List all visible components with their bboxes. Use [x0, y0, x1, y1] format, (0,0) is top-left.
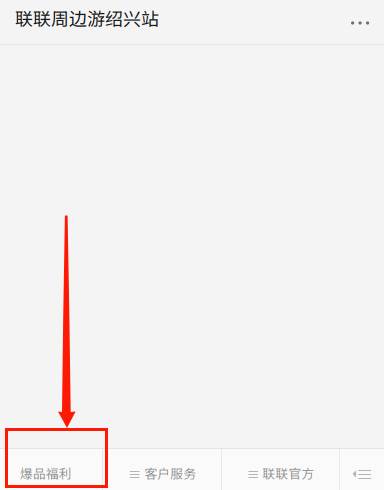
button[interactable]: Hide panel [339, 449, 384, 490]
staticText: 联联官方 [262, 464, 314, 482]
staticText: 联联周边游绍兴站 [15, 5, 159, 31]
button[interactable]: 爆品福利 [0, 449, 102, 490]
staticText: 爆品福利 [20, 464, 72, 482]
button[interactable]: More options [335, 0, 379, 44]
button[interactable]: 客户服务 [102, 449, 221, 490]
button[interactable]: 联联官方 [221, 449, 339, 490]
staticText: 客户服务 [144, 464, 196, 482]
